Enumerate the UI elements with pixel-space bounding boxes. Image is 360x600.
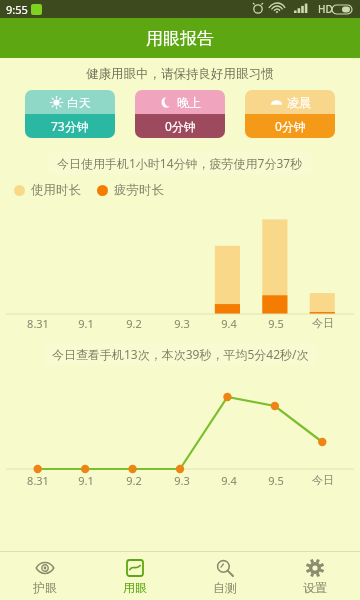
staticText: 9:55 bbox=[6, 2, 28, 17]
other: 护眼 bbox=[35, 558, 55, 578]
button[interactable]: 用眼 bbox=[90, 552, 180, 600]
staticText: 8.31 bbox=[27, 473, 49, 488]
staticText: 9.5 bbox=[268, 316, 284, 331]
button[interactable]: 自测 bbox=[180, 552, 270, 600]
staticText: 9.1 bbox=[78, 316, 94, 331]
staticText: 用眼报告 bbox=[146, 28, 214, 49]
staticText: 0分钟 bbox=[165, 118, 196, 134]
staticText: 9.4 bbox=[221, 473, 237, 488]
staticText: 今日使用手机1小时14分钟，疲劳使用7分37秒 bbox=[57, 155, 303, 171]
staticText: 晚上 bbox=[177, 95, 201, 110]
button[interactable]: 白天 bbox=[25, 90, 115, 138]
button[interactable]: 晚上 bbox=[135, 90, 225, 138]
staticText: 今日查看手机13次，本次39秒，平均5分42秒/次 bbox=[52, 346, 309, 362]
staticText: 凌晨 bbox=[287, 95, 311, 110]
staticText: 9.4 bbox=[221, 316, 237, 331]
other: 设置 bbox=[305, 558, 325, 578]
staticText: 9.2 bbox=[126, 473, 142, 488]
staticText: 9.2 bbox=[126, 316, 142, 331]
staticText: 设置 bbox=[303, 580, 327, 595]
staticText: 护眼 bbox=[33, 580, 57, 595]
other: 用眼 bbox=[125, 558, 145, 578]
staticText: 0分钟 bbox=[275, 118, 306, 134]
staticText: 9.5 bbox=[268, 473, 284, 488]
staticText: 白天 bbox=[67, 95, 91, 110]
staticText: HD bbox=[318, 2, 333, 16]
button[interactable]: 护眼 bbox=[0, 552, 90, 600]
button[interactable]: 凌晨 bbox=[245, 90, 335, 138]
staticText: 健康用眼中，请保持良好用眼习惯 bbox=[86, 66, 274, 82]
staticText: 疲劳时长 bbox=[114, 182, 164, 198]
staticText: 73分钟 bbox=[51, 118, 89, 134]
button[interactable]: 设置 bbox=[270, 552, 360, 600]
staticText: 今日 bbox=[312, 473, 334, 487]
staticText: 自测 bbox=[213, 580, 237, 595]
staticText: 今日 bbox=[312, 316, 334, 330]
staticText: 用眼 bbox=[123, 580, 147, 595]
staticText: 使用时长 bbox=[31, 182, 81, 198]
other: 自测 bbox=[215, 558, 235, 578]
staticText: 9.3 bbox=[174, 473, 190, 488]
staticText: 8.31 bbox=[27, 316, 49, 331]
staticText: 9.3 bbox=[174, 316, 190, 331]
staticText: 9.1 bbox=[78, 473, 94, 488]
